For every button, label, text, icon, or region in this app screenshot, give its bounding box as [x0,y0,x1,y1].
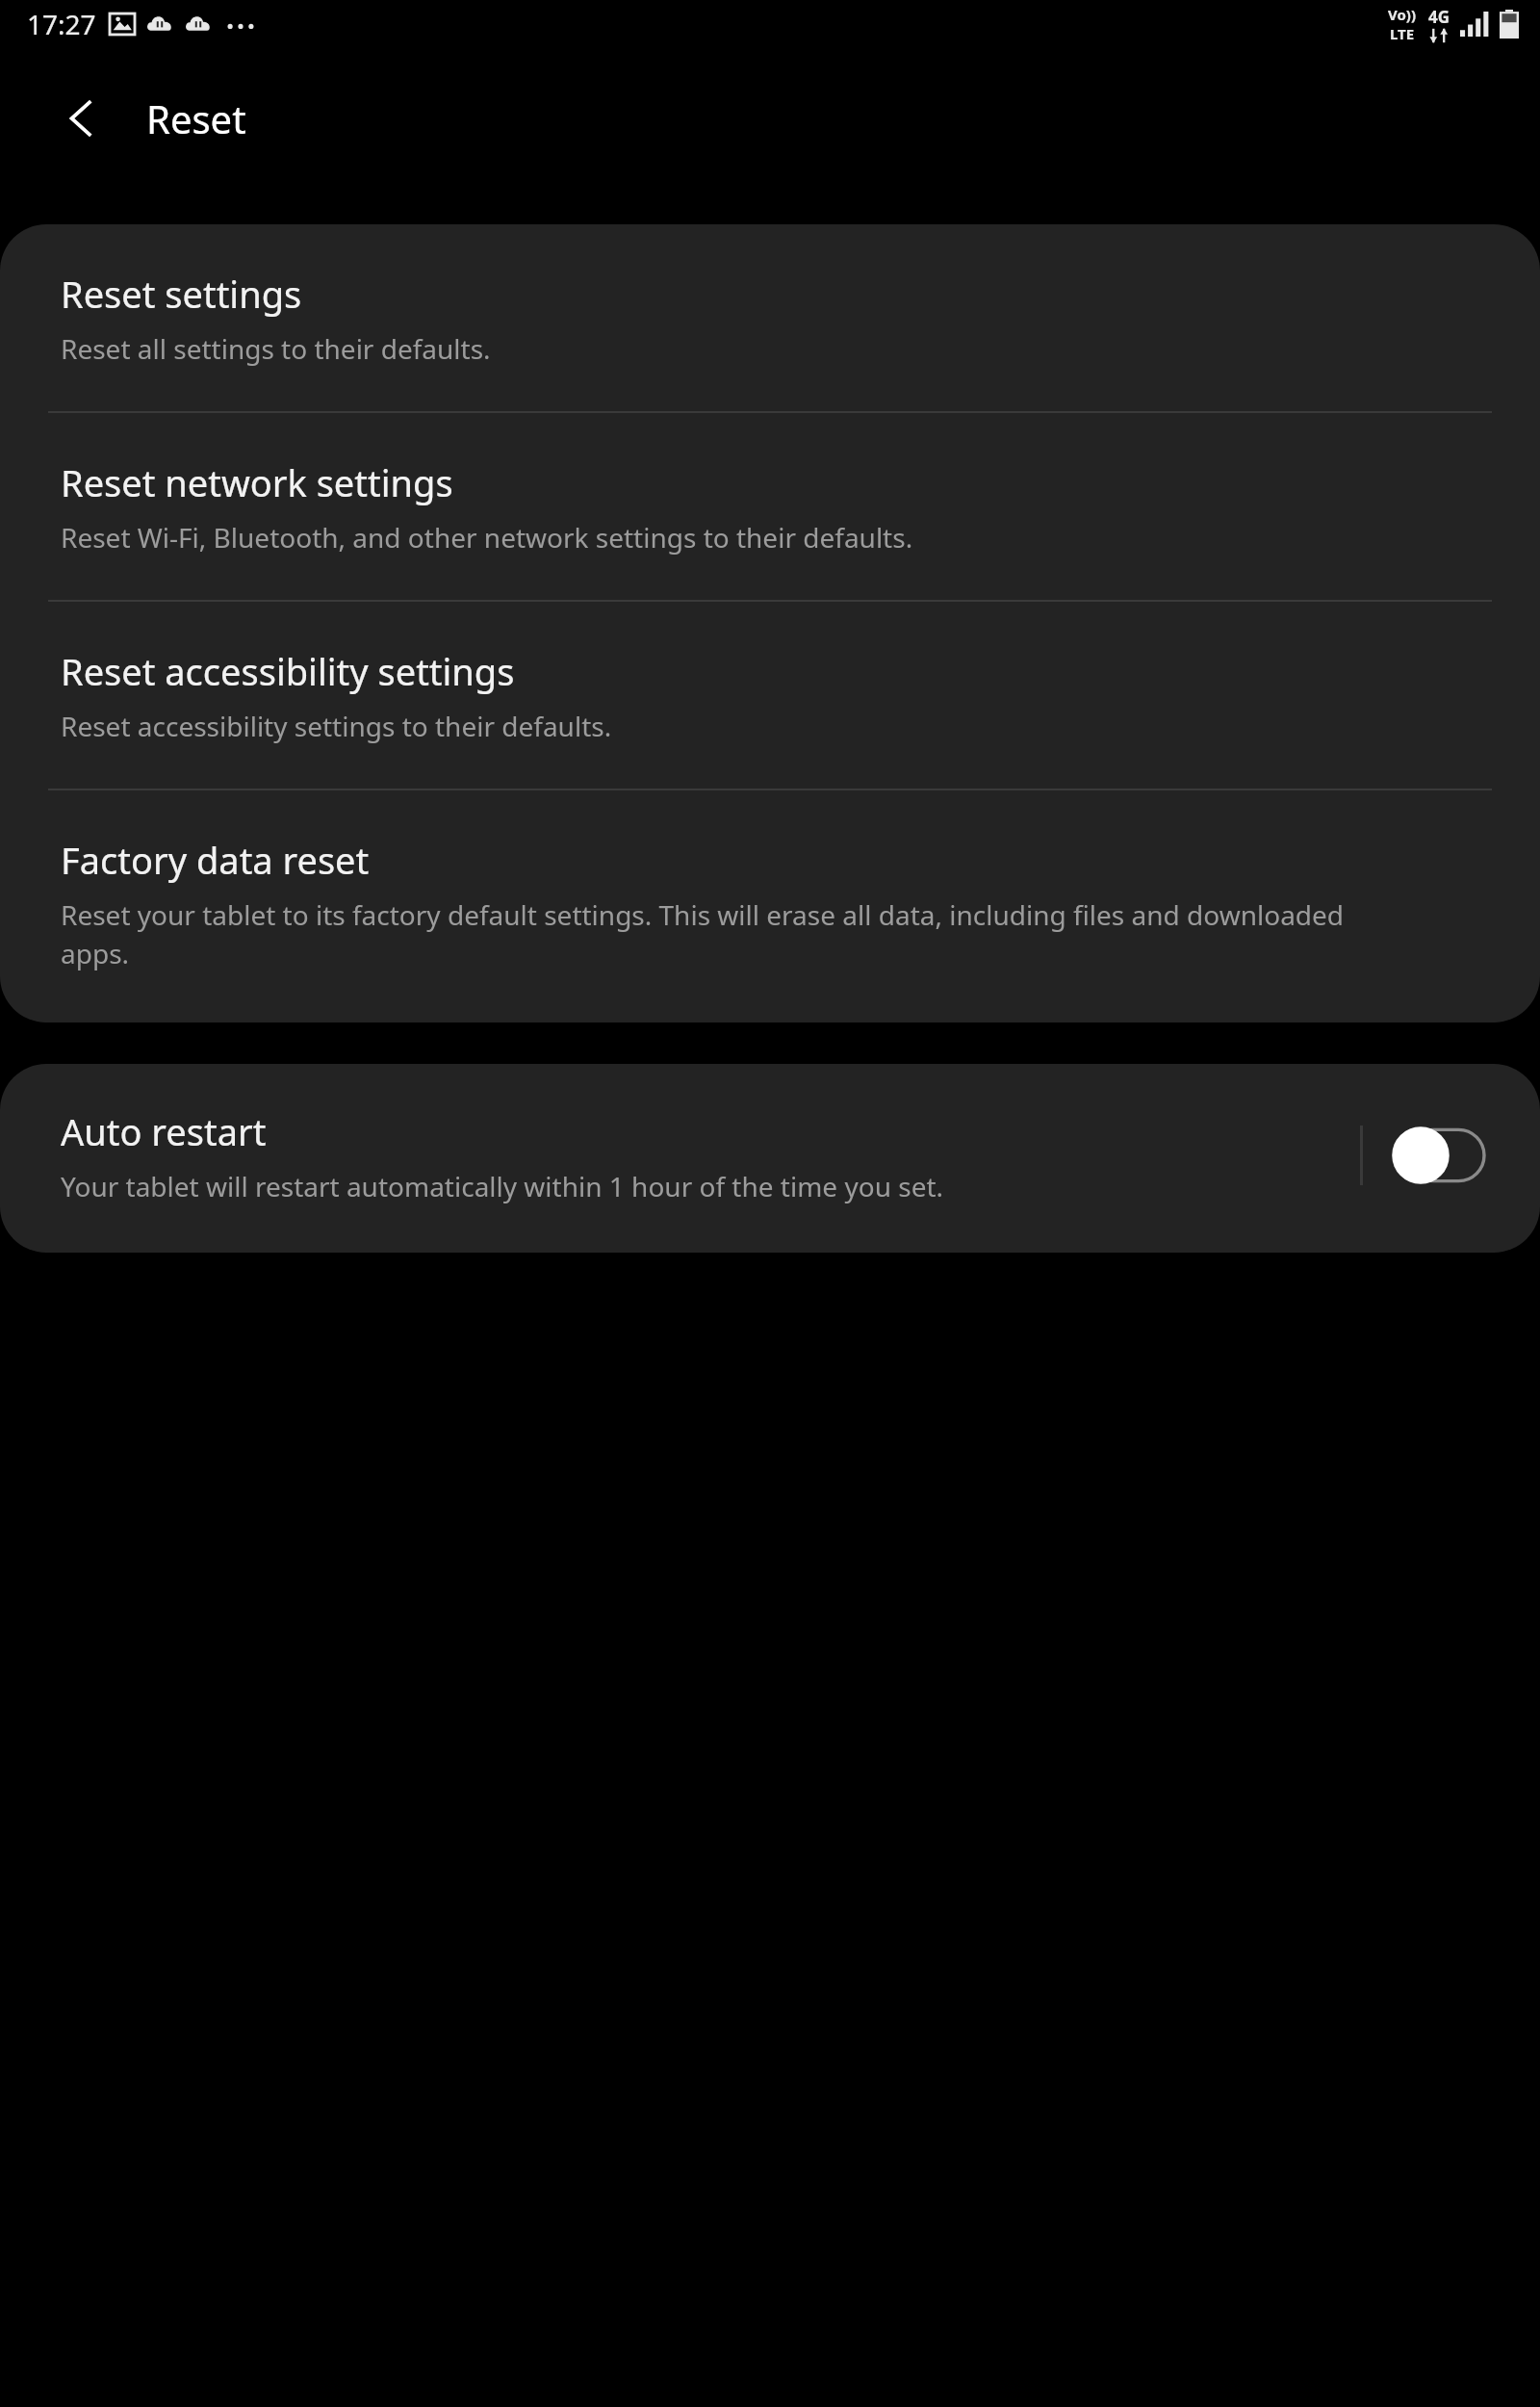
staticText: 4G [1428,6,1450,28]
staticText: Reset network settings [61,457,453,507]
staticText: Your tablet will restart automatically w… [61,1168,944,1204]
staticText: Factory data reset [61,835,370,885]
button[interactable]: Reset accessibility settings [0,602,1540,789]
staticText: Reset your tablet to its factory default… [61,896,1396,972]
staticText: Vo)) [1388,5,1416,24]
staticText: Auto restart [61,1106,267,1156]
staticText: Reset [146,92,246,144]
staticText: Reset Wi-Fi, Bluetooth, and other networ… [61,519,913,556]
staticText: Reset accessibility settings [61,646,515,696]
button[interactable]: Reset network settings [0,413,1540,600]
button[interactable]: Auto restart [0,1064,1540,1253]
staticText: Reset all settings to their defaults. [61,330,491,367]
staticText: 17:27 [27,6,96,42]
button[interactable]: Factory data reset [0,790,1540,1022]
button[interactable]: Reset settings [0,224,1540,411]
button[interactable]: Auto restart toggle [1388,1122,1492,1189]
staticText: LTE [1390,24,1415,43]
button[interactable]: Back [29,65,135,171]
staticText: Reset settings [61,269,302,319]
staticText: Reset accessibility settings to their de… [61,708,612,744]
